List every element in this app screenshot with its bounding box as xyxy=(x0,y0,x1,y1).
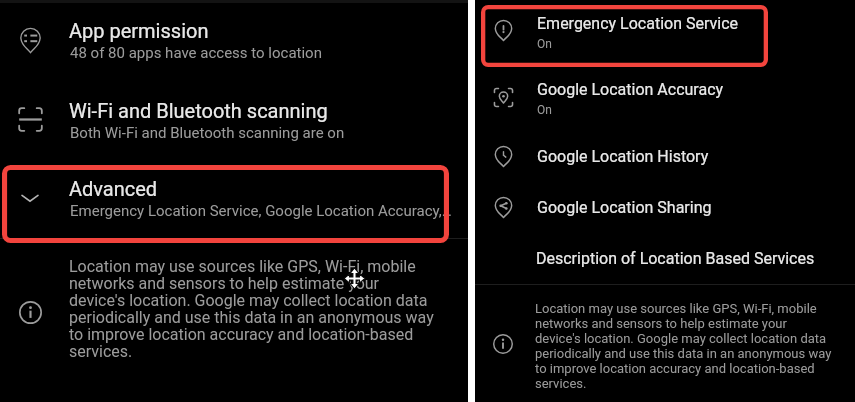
staticText: Location may use sources like GPS, Wi-Fi… xyxy=(69,258,437,360)
staticText: Google Location Sharing xyxy=(537,198,712,217)
staticText: On xyxy=(537,37,552,51)
staticText: Google Location History xyxy=(537,147,709,166)
staticText: On xyxy=(537,103,552,117)
button[interactable] xyxy=(475,72,855,128)
staticText: Location may use sources like GPS, Wi-Fi… xyxy=(535,301,835,391)
staticText: Both Wi-Fi and Bluetooth scanning are on xyxy=(70,124,345,142)
staticText: Emergency Location Service xyxy=(537,14,739,33)
button[interactable] xyxy=(475,8,855,64)
button[interactable] xyxy=(475,136,855,178)
button[interactable] xyxy=(475,240,855,280)
staticText: App permission xyxy=(69,19,209,42)
button[interactable] xyxy=(0,168,468,240)
staticText: Wi-Fi and Bluetooth scanning xyxy=(69,99,328,122)
staticText: Emergency Location Service, Google Locat… xyxy=(70,202,452,220)
button[interactable] xyxy=(0,10,468,82)
button[interactable] xyxy=(475,187,855,229)
staticText: Advanced xyxy=(69,177,158,200)
staticText: Description of Location Based Services xyxy=(536,249,815,268)
button[interactable] xyxy=(0,90,468,162)
staticText: Google Location Accuracy xyxy=(537,80,724,99)
staticText: 48 of 80 apps have access to location xyxy=(70,44,322,62)
